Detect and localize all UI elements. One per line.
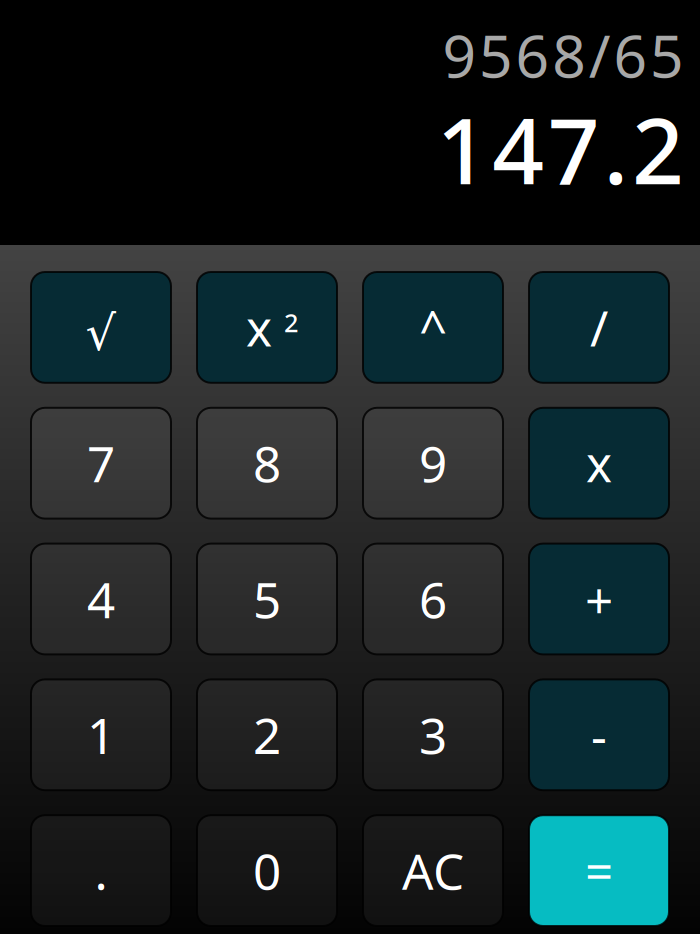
staticText: 3 [419, 702, 447, 767]
button[interactable]: Minus [529, 679, 669, 790]
staticText: - [591, 702, 607, 767]
staticText: / [590, 295, 608, 360]
button[interactable]: Square root [31, 272, 171, 383]
staticText: x [586, 430, 612, 496]
button[interactable]: 7 [31, 408, 171, 519]
staticText: √ [85, 306, 116, 361]
staticText: + [585, 566, 613, 632]
button[interactable]: 5 [197, 544, 337, 654]
staticText: 6 [419, 566, 447, 632]
staticText: 9568/65 [442, 16, 684, 94]
button[interactable]: Divide [529, 272, 669, 383]
staticText: 2 [253, 702, 281, 767]
staticText: 7 [87, 430, 115, 496]
button[interactable]: Equals [529, 815, 669, 926]
button[interactable]: Multiply [529, 408, 669, 519]
button[interactable]: Decimal point [31, 815, 171, 926]
staticText: 4 [87, 566, 115, 632]
staticText: 147.2 [437, 89, 684, 209]
staticText: 0 [253, 838, 281, 903]
staticText: = [585, 838, 613, 903]
button[interactable]: Power [363, 272, 503, 383]
button[interactable]: 4 [31, 544, 171, 654]
staticText: ^ [419, 295, 447, 360]
button[interactable]: 3 [363, 679, 503, 790]
button[interactable]: Squared [197, 272, 337, 383]
button[interactable]: 8 [197, 408, 337, 519]
button[interactable]: 1 [31, 679, 171, 790]
staticText: x [246, 295, 272, 360]
button[interactable]: 6 [363, 544, 503, 654]
staticText: 2 [284, 306, 298, 339]
staticText: 1 [87, 702, 115, 767]
button[interactable]: 0 [197, 815, 337, 926]
button[interactable]: 2 [197, 679, 337, 790]
staticText: AC [402, 838, 464, 903]
staticText: . [94, 838, 107, 903]
staticText: 9 [419, 430, 447, 496]
button[interactable]: Plus [529, 544, 669, 654]
staticText: 5 [253, 566, 281, 632]
button[interactable]: 9 [363, 408, 503, 519]
staticText: 8 [253, 430, 281, 496]
button[interactable]: All clear [363, 815, 503, 926]
